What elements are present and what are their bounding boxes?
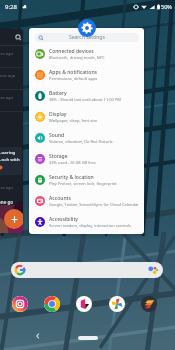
staticText: 50%	[161, 3, 172, 10]
button[interactable]: Security & location	[29, 169, 144, 190]
staticText: Security & location	[49, 174, 94, 181]
staticText: 9:28	[5, 3, 17, 11]
staticText: 8 minutes ago	[0, 51, 13, 56]
button[interactable]: Apps & notifications	[29, 64, 144, 85]
button[interactable]: Search settings	[35, 33, 139, 42]
staticText: Battery	[49, 90, 67, 97]
staticText: Screen readers, display, interaction con…	[49, 223, 131, 228]
button[interactable]: Accounts	[29, 190, 144, 211]
button[interactable]: Connected devices	[29, 43, 144, 64]
button[interactable]: Display	[29, 106, 144, 127]
staticText: 38% - Should last until about 11:00 PM	[49, 97, 121, 102]
button[interactable]: Storage	[29, 148, 144, 169]
button[interactable]: Search settings	[29, 28, 144, 234]
staticText: Google, Twitter, SmoothSync for Cloud Ca…	[49, 202, 139, 207]
staticText: Play Protect, screen lock, fingerprint	[49, 181, 117, 186]
staticText: 5 minutes ago	[0, 95, 13, 100]
staticText: Everyone go	[0, 199, 13, 205]
button[interactable]: Sound	[29, 127, 144, 148]
staticText: Bluetooth, driving mode, NFC	[49, 55, 105, 60]
staticText: Volume, vibration, Do Not Disturb	[49, 139, 113, 144]
button[interactable]: Search	[11, 262, 163, 278]
button[interactable]: Compose	[4, 209, 23, 229]
button[interactable]: Files	[141, 296, 157, 312]
staticText: Display	[49, 111, 67, 118]
button[interactable]: Back	[33, 331, 43, 341]
staticText: 23 minutes ago	[0, 73, 16, 78]
button[interactable]: Battery	[29, 85, 144, 106]
staticText: 33% used - 41.68 GB free	[49, 160, 96, 165]
button[interactable]: ...uaring	[0, 147, 22, 175]
staticText: Permissions, default apps	[49, 76, 98, 81]
staticText: ...nch with	[0, 157, 20, 163]
button[interactable]: Play Movies	[76, 296, 92, 312]
staticText: Connected devices	[49, 48, 94, 55]
button[interactable]: Instagram	[12, 296, 28, 312]
staticText: Storage	[49, 153, 68, 160]
staticText: Wallpaper, sleep, font size	[49, 118, 98, 123]
button[interactable]: Accessibility	[29, 211, 144, 232]
button[interactable]: Photos	[109, 296, 125, 312]
staticText: Search settings	[69, 34, 105, 41]
button[interactable]: Settings app	[78, 19, 96, 37]
staticText: 6 minutes ago	[0, 185, 13, 190]
button[interactable]: 8 minutes ago	[0, 29, 23, 233]
staticText: Accounts	[49, 195, 71, 202]
staticText: Accessibility	[49, 216, 78, 223]
button[interactable]: Home	[78, 336, 98, 340]
button[interactable]: Chrome	[44, 296, 60, 312]
staticText: ...uaring	[0, 150, 16, 156]
staticText: Sound	[49, 132, 65, 139]
staticText: Apps & notifications	[49, 69, 97, 76]
